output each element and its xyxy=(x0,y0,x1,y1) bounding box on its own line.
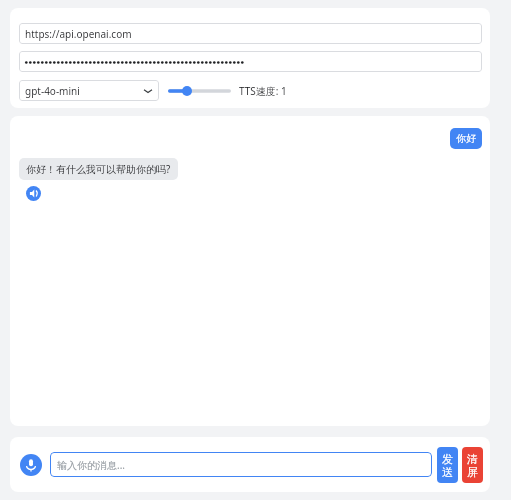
staticText: 你好 xyxy=(456,132,476,145)
button[interactable]: 你好 xyxy=(450,128,482,149)
button[interactable]: 清屏 xyxy=(462,447,483,483)
button[interactable]: 发送 xyxy=(437,447,458,483)
button[interactable]: 朗读 xyxy=(26,186,41,201)
staticText: 发送 xyxy=(437,452,458,479)
button[interactable]: 你好！有什么我可以帮助你的吗? xyxy=(19,158,178,180)
staticText: 你好！有什么我可以帮助你的吗? xyxy=(26,162,171,176)
button[interactable]: 输入你的消息... xyxy=(50,452,432,477)
button[interactable]: 语音输入 xyxy=(20,454,42,476)
staticText: gpt-4o-mini xyxy=(25,84,80,98)
staticText: https://api.openai.com xyxy=(25,27,132,41)
staticText: TTS速度: 1 xyxy=(239,84,287,98)
button[interactable] xyxy=(19,51,482,72)
button[interactable]: gpt-4o-mini xyxy=(19,80,159,101)
button[interactable]: https://api.openai.com xyxy=(19,23,482,44)
staticText: 输入你的消息... xyxy=(57,458,126,472)
staticText: 清屏 xyxy=(462,452,483,479)
button[interactable] xyxy=(168,81,231,101)
